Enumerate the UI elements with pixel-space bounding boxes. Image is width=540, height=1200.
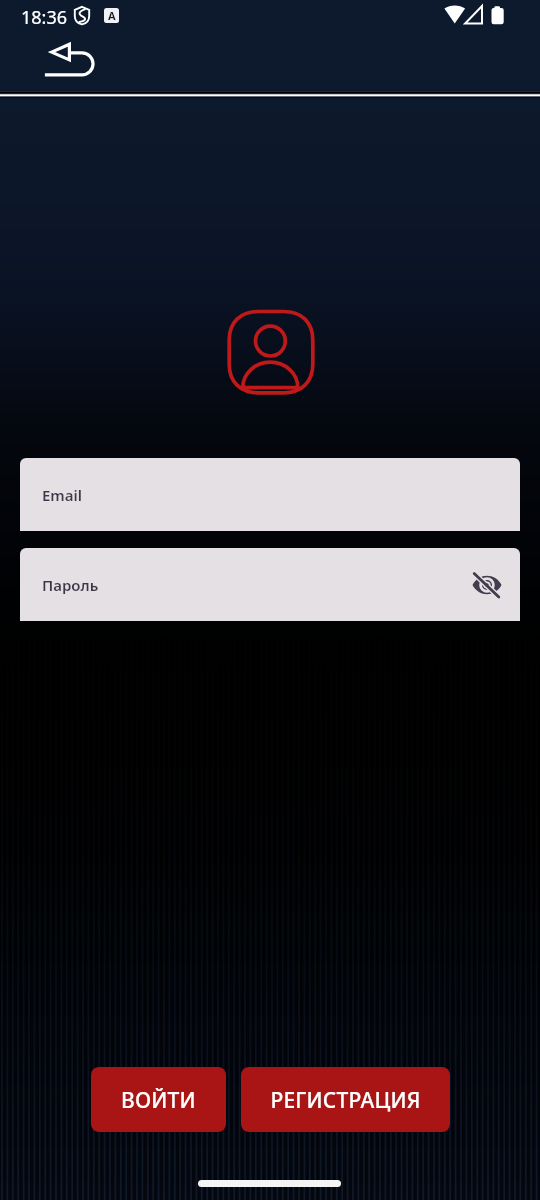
- staticText: Email: [42, 485, 83, 505]
- button[interactable]: Пароль: [20, 548, 520, 621]
- button[interactable]: Email: [20, 458, 520, 531]
- staticText: РЕГИСТРАЦИЯ: [270, 1086, 421, 1115]
- staticText: Пароль: [42, 575, 99, 595]
- button[interactable]: Back: [30, 34, 100, 84]
- staticText: A: [108, 8, 116, 23]
- staticText: 18:36: [21, 5, 68, 30]
- staticText: ВОЙТИ: [121, 1086, 196, 1115]
- button[interactable]: РЕГИСТРАЦИЯ: [241, 1067, 450, 1132]
- button[interactable]: Toggle password visibility: [468, 566, 506, 604]
- button[interactable]: ВОЙТИ: [91, 1067, 226, 1132]
